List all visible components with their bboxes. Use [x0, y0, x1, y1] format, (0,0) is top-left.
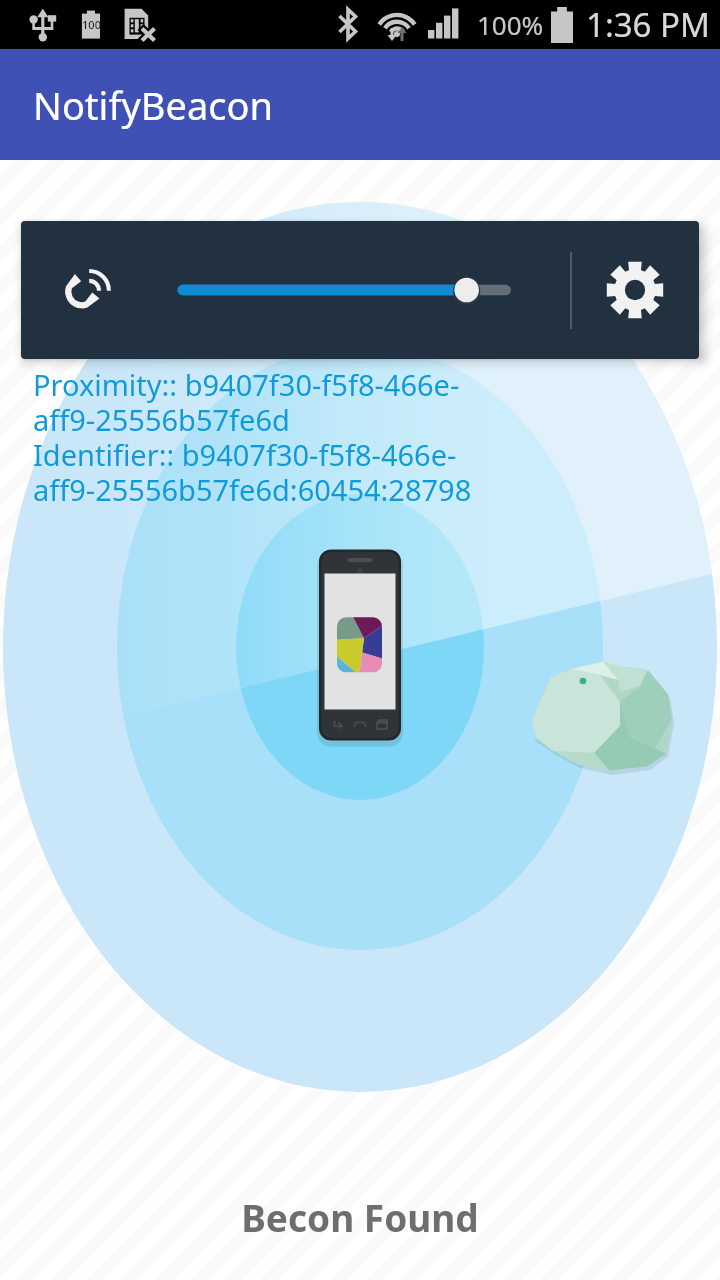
staticText: Proximity:: b9407f30-f5f8-466e- aff9-255… — [33, 365, 472, 510]
staticText: 1:36 PM — [586, 2, 710, 47]
button[interactable]: Settings — [571, 221, 699, 359]
button[interactable]: Volume slider — [164, 260, 524, 320]
staticText: 100 — [82, 17, 101, 32]
button[interactable]: NotifyBeacon — [0, 49, 720, 160]
staticText: NotifyBeacon — [33, 79, 274, 131]
staticText: 100% — [477, 7, 544, 42]
staticText: Becon Found — [241, 1192, 479, 1242]
button[interactable]: Ring volume — [21, 221, 156, 359]
